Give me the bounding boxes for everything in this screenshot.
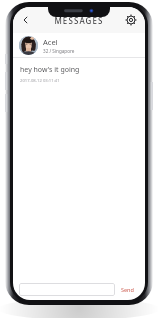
staticText: 32 / Singapore [43,48,75,54]
staticText: hey how's it going [20,65,80,75]
button[interactable]: Settings [122,11,140,29]
button[interactable]: Send [115,283,139,296]
button[interactable]: Acel [13,33,145,57]
staticText: Send [121,286,134,293]
button[interactable]: Message input [19,283,115,296]
button[interactable]: Back [17,11,35,29]
staticText: Acel [43,37,58,47]
staticText: 2017-08-12 03:11:41 [20,78,60,84]
staticText: MESSAGES [54,15,104,26]
